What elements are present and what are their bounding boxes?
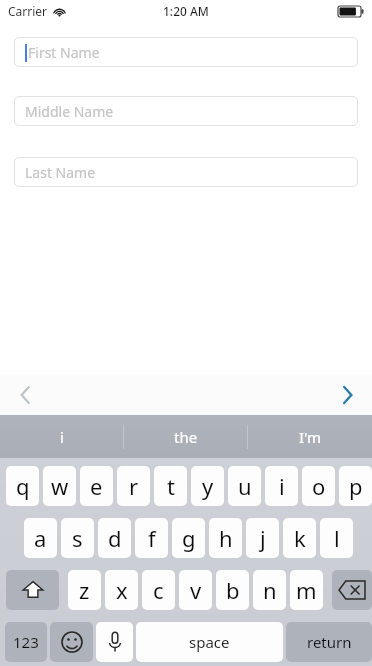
button[interactable]: x bbox=[105, 570, 138, 610]
staticText: space bbox=[189, 632, 230, 652]
button[interactable]: l bbox=[320, 518, 353, 558]
button[interactable]: h bbox=[209, 518, 242, 558]
staticText: b bbox=[226, 575, 240, 605]
button[interactable]: s bbox=[61, 518, 94, 558]
staticText: u bbox=[238, 471, 252, 501]
staticText: o bbox=[312, 471, 326, 501]
staticText: Last Name bbox=[25, 163, 96, 182]
button[interactable]: t bbox=[154, 466, 187, 506]
staticText: e bbox=[90, 471, 103, 501]
button[interactable]: c bbox=[142, 570, 175, 610]
button[interactable]: I'm bbox=[248, 415, 372, 458]
staticText: 1:20 AM bbox=[163, 3, 209, 19]
button[interactable]: n bbox=[253, 570, 286, 610]
button[interactable]: Middle Name bbox=[14, 96, 358, 126]
button[interactable]: return bbox=[286, 622, 372, 662]
button[interactable]: a bbox=[24, 518, 57, 558]
button[interactable]: k bbox=[283, 518, 316, 558]
staticText: i bbox=[60, 427, 64, 447]
button[interactable]: j bbox=[246, 518, 279, 558]
button[interactable]: w bbox=[43, 466, 76, 506]
button[interactable]: d bbox=[98, 518, 131, 558]
staticText: p bbox=[349, 471, 363, 501]
staticText: First Name bbox=[28, 43, 100, 62]
button[interactable]: Last Name bbox=[14, 157, 358, 187]
button[interactable]: o bbox=[302, 466, 335, 506]
staticText: d bbox=[108, 523, 122, 553]
staticText: n bbox=[263, 575, 277, 605]
button[interactable]: e bbox=[80, 466, 113, 506]
staticText: f bbox=[148, 523, 156, 553]
staticText: i bbox=[279, 471, 285, 501]
button[interactable]: 123 bbox=[5, 622, 47, 662]
button[interactable]: p bbox=[339, 466, 372, 506]
staticText: y bbox=[202, 471, 214, 501]
staticText: return bbox=[307, 632, 352, 652]
staticText: s bbox=[72, 523, 83, 553]
button[interactable]: z bbox=[68, 570, 101, 610]
staticText: q bbox=[16, 471, 30, 501]
staticText: r bbox=[129, 471, 139, 501]
button[interactable]: space bbox=[136, 622, 283, 662]
button[interactable]: f bbox=[135, 518, 168, 558]
staticText: 123 bbox=[13, 632, 39, 652]
staticText: Middle Name bbox=[25, 102, 114, 121]
staticText: the bbox=[174, 427, 198, 447]
button[interactable]: q bbox=[6, 466, 39, 506]
staticText: Carrier bbox=[8, 3, 48, 19]
staticText: h bbox=[219, 523, 233, 553]
staticText: m bbox=[296, 575, 317, 605]
button[interactable]: Previous field bbox=[10, 380, 40, 410]
button[interactable]: g bbox=[172, 518, 205, 558]
button[interactable]: First Name bbox=[14, 37, 358, 67]
staticText: I'm bbox=[299, 427, 322, 447]
button[interactable]: the bbox=[124, 415, 248, 458]
button[interactable]: Next field bbox=[332, 380, 362, 410]
staticText: x bbox=[116, 575, 128, 605]
staticText: k bbox=[294, 523, 306, 553]
staticText: w bbox=[51, 471, 69, 501]
staticText: t bbox=[167, 471, 175, 501]
button[interactable]: u bbox=[228, 466, 261, 506]
staticText: g bbox=[182, 523, 196, 553]
button[interactable]: b bbox=[216, 570, 249, 610]
staticText: j bbox=[260, 523, 266, 553]
staticText: a bbox=[34, 523, 47, 553]
staticText: z bbox=[79, 575, 90, 605]
button[interactable]: v bbox=[179, 570, 212, 610]
button[interactable]: y bbox=[191, 466, 224, 506]
button[interactable]: i bbox=[0, 415, 124, 458]
button[interactable]: r bbox=[117, 466, 150, 506]
button[interactable]: m bbox=[290, 570, 323, 610]
button[interactable]: Emoji bbox=[50, 622, 93, 662]
button[interactable]: i bbox=[265, 466, 298, 506]
button[interactable]: Shift bbox=[6, 570, 59, 610]
button[interactable]: Backspace bbox=[332, 570, 372, 610]
button[interactable]: Dictation bbox=[96, 622, 133, 662]
staticText: c bbox=[153, 575, 164, 605]
staticText: v bbox=[190, 575, 202, 605]
staticText: l bbox=[334, 523, 340, 553]
